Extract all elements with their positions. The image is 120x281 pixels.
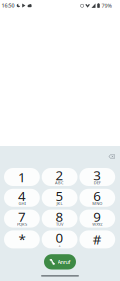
button[interactable]: 1	[4, 168, 40, 186]
button[interactable]: 7	[4, 210, 40, 228]
staticText: PQRS	[17, 222, 27, 227]
button[interactable]: 8	[42, 210, 77, 228]
button[interactable]: 5	[42, 189, 77, 207]
staticText: WXYZ	[92, 222, 102, 227]
staticText: TUV	[56, 222, 63, 227]
staticText: 6	[93, 187, 101, 205]
staticText: 2	[56, 166, 64, 184]
staticText: 4	[18, 187, 26, 205]
button[interactable]: 4	[4, 189, 40, 207]
staticText: Anruf	[57, 258, 70, 265]
staticText: +	[59, 242, 61, 248]
staticText: 5	[56, 187, 64, 205]
staticText: 3	[93, 166, 101, 184]
staticText: 9	[93, 208, 101, 225]
staticText: GHI	[18, 201, 25, 206]
staticText: JKL	[57, 201, 63, 206]
staticText: 7	[18, 208, 26, 225]
staticText: DEF	[94, 180, 101, 185]
button[interactable]: 3	[79, 168, 115, 186]
button[interactable]: 9	[79, 210, 115, 228]
staticText: 79%	[101, 2, 111, 9]
staticText: 0	[56, 229, 64, 246]
button[interactable]: 6	[79, 189, 115, 207]
staticText: #	[93, 230, 102, 248]
staticText: 8	[56, 208, 64, 225]
staticText: MNO	[92, 201, 102, 206]
button[interactable]: Anruf	[44, 254, 76, 269]
button[interactable]: #	[79, 230, 115, 248]
staticText: 1	[18, 168, 26, 186]
staticText: *	[18, 230, 25, 248]
button[interactable]: 0	[42, 230, 77, 248]
staticText: ABC	[55, 180, 64, 185]
staticText: 16:50	[2, 2, 15, 9]
button[interactable]: *	[4, 230, 40, 248]
button[interactable]: Backspace	[105, 151, 118, 162]
button[interactable]: 2	[42, 168, 77, 186]
